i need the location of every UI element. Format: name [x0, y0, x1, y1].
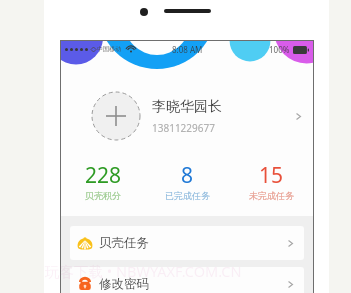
staticText: 李晓华园长	[152, 98, 222, 116]
staticText: 已完成任务	[165, 190, 210, 201]
button[interactable]: 修改密码	[70, 267, 304, 293]
staticText: 13811229677	[152, 121, 215, 135]
staticText: 8:08 AM	[172, 44, 203, 55]
staticText: 贝壳积分	[85, 190, 121, 201]
staticText: 贝壳任务	[99, 235, 149, 251]
button[interactable]: 228	[61, 167, 145, 207]
button[interactable]: 8	[145, 167, 229, 207]
button[interactable]: 贝壳任务	[70, 226, 304, 260]
staticText: 100%	[269, 44, 290, 55]
button[interactable]: 李晓华园长	[61, 65, 313, 167]
staticText: 228	[85, 161, 122, 190]
staticText: 中国移动	[97, 45, 121, 53]
button[interactable]: 15	[229, 167, 313, 207]
staticText: 未完成任务	[249, 190, 294, 201]
staticText: 15	[259, 161, 284, 190]
staticText: 玩客下载 • NBWYAXF.COM.CN	[45, 261, 242, 281]
staticText: 修改密码	[99, 276, 149, 292]
staticText: 8	[181, 161, 194, 190]
